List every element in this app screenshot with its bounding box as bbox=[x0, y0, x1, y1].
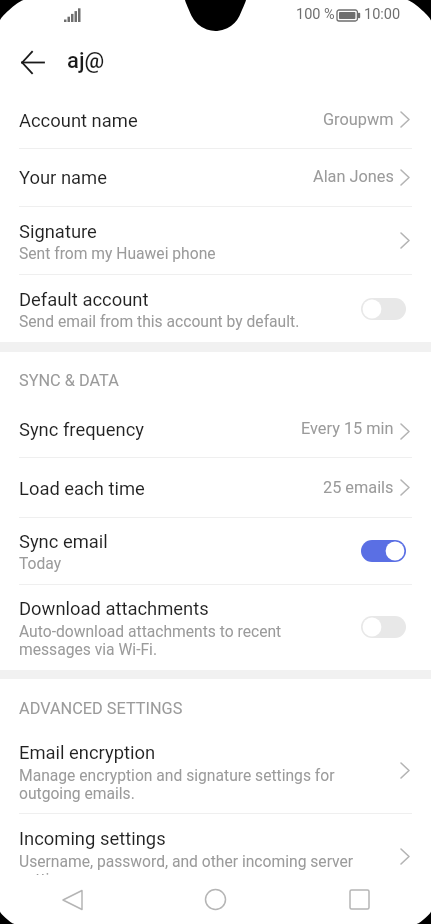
staticText: SYNC & DATA bbox=[19, 371, 119, 390]
staticText: 25 emails bbox=[323, 478, 394, 497]
staticText: Your name bbox=[19, 167, 364, 189]
staticText: Groupwm bbox=[323, 110, 394, 129]
button[interactable]: Sync email bbox=[0, 518, 431, 584]
staticText: Email encryption bbox=[19, 742, 364, 764]
button[interactable]: Sync frequency bbox=[0, 405, 431, 457]
staticText: Account name bbox=[19, 110, 364, 132]
staticText: Sync frequency bbox=[19, 419, 364, 441]
button[interactable]: Download attachments bbox=[0, 584, 431, 670]
staticText: Alan Jones bbox=[313, 167, 394, 186]
button[interactable]: Signature bbox=[0, 207, 431, 274]
staticText: Load each time bbox=[19, 478, 364, 500]
button[interactable]: Load each time bbox=[0, 459, 431, 517]
button[interactable]: Toggle on bbox=[361, 540, 406, 562]
staticText: Sent from my Huawei phone bbox=[19, 244, 364, 262]
staticText: 10:00 bbox=[364, 6, 401, 23]
button[interactable]: Email encryption bbox=[0, 728, 431, 813]
staticText: Manage encryption and signature settings… bbox=[19, 766, 364, 803]
button[interactable]: Toggle off bbox=[361, 298, 406, 320]
staticText: Incoming settings bbox=[19, 828, 364, 850]
button[interactable]: Back bbox=[11, 41, 53, 83]
button[interactable]: Account name bbox=[0, 96, 431, 148]
staticText: Download attachments bbox=[19, 598, 364, 620]
button[interactable]: Your name bbox=[0, 149, 431, 206]
button[interactable]: Home bbox=[187, 875, 243, 924]
staticText: Signature bbox=[19, 221, 364, 243]
staticText: Username, password, and other incoming s… bbox=[19, 852, 364, 875]
button[interactable]: Toggle off bbox=[361, 616, 406, 638]
button[interactable]: Recent apps bbox=[331, 875, 387, 924]
staticText: Auto-download attachments to recent mess… bbox=[19, 622, 356, 659]
staticText: 100 % bbox=[296, 6, 335, 23]
button[interactable]: Back bbox=[44, 875, 100, 924]
staticText: Sync email bbox=[19, 531, 364, 553]
button[interactable]: Incoming settings bbox=[0, 814, 431, 875]
staticText: Every 15 min bbox=[301, 419, 394, 438]
staticText: Send email from this account by default. bbox=[19, 312, 364, 330]
staticText: Today bbox=[19, 554, 364, 572]
staticText: ADVANCED SETTINGS bbox=[19, 699, 183, 718]
staticText: aj@ bbox=[67, 48, 105, 74]
staticText: Default account bbox=[19, 289, 364, 311]
button[interactable]: Default account bbox=[0, 275, 431, 342]
